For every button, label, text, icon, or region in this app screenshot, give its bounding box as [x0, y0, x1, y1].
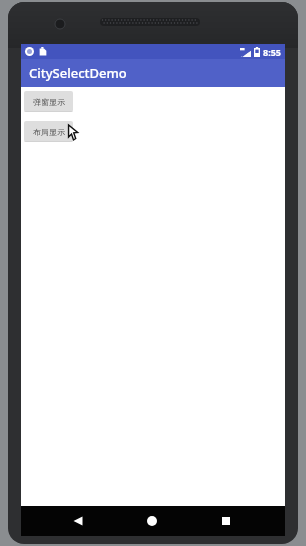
button[interactable]: 布局显示: [24, 121, 73, 142]
button[interactable]: Recent apps: [211, 506, 241, 536]
staticText: CitySelectDemo: [29, 64, 127, 82]
staticText: 布局显示: [33, 127, 65, 137]
button[interactable]: Back: [63, 506, 93, 536]
staticText: 弹窗显示: [33, 97, 65, 107]
staticText: 8:55: [263, 46, 281, 58]
button[interactable]: 弹窗显示: [24, 91, 73, 112]
button[interactable]: Home: [137, 506, 167, 536]
